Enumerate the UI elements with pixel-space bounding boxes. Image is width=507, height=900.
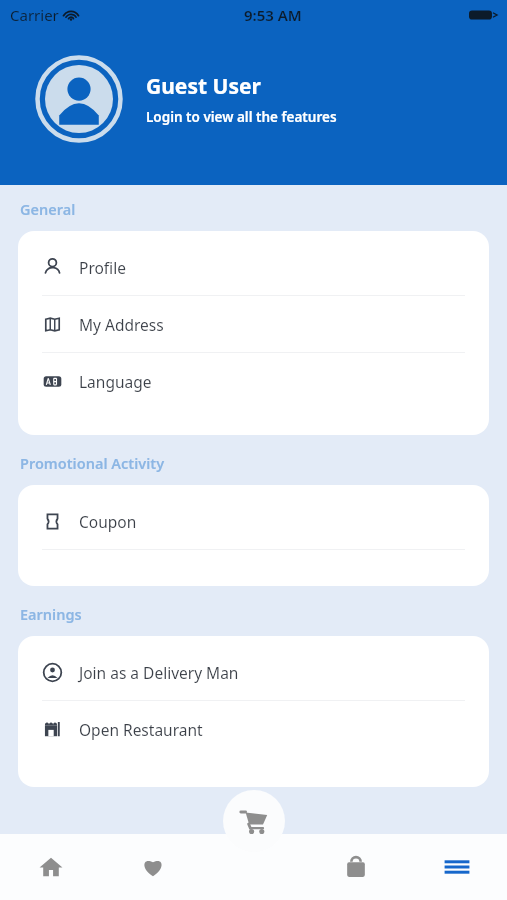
staticText: Guest User	[146, 72, 261, 101]
staticText: Promotional Activity	[20, 453, 165, 473]
button[interactable]: Join as a Delivery Man	[18, 644, 489, 700]
button[interactable]: Cart	[223, 790, 285, 852]
staticText: Carrier	[10, 5, 59, 25]
staticText: My Address	[79, 314, 164, 335]
button[interactable]: Profile	[18, 239, 489, 295]
button[interactable]: Menu	[406, 834, 507, 900]
button[interactable]: My Address	[18, 296, 489, 352]
staticText: Open Restaurant	[79, 719, 203, 740]
staticText: Language	[79, 371, 152, 392]
staticText: Profile	[79, 257, 126, 278]
button[interactable]: Language	[18, 353, 489, 409]
staticText: 9:53 AM	[244, 5, 302, 25]
button[interactable]: Favorites	[102, 834, 204, 900]
button[interactable]: Open Restaurant	[18, 701, 489, 757]
staticText: Coupon	[79, 511, 137, 532]
staticText: Earnings	[20, 604, 82, 624]
button[interactable]: Coupon	[18, 493, 489, 549]
staticText: Join as a Delivery Man	[79, 662, 239, 683]
button[interactable]: Home	[0, 834, 102, 900]
staticText: Login to view all the features	[146, 108, 337, 126]
button[interactable]: Orders	[305, 834, 406, 900]
staticText: General	[20, 199, 76, 219]
